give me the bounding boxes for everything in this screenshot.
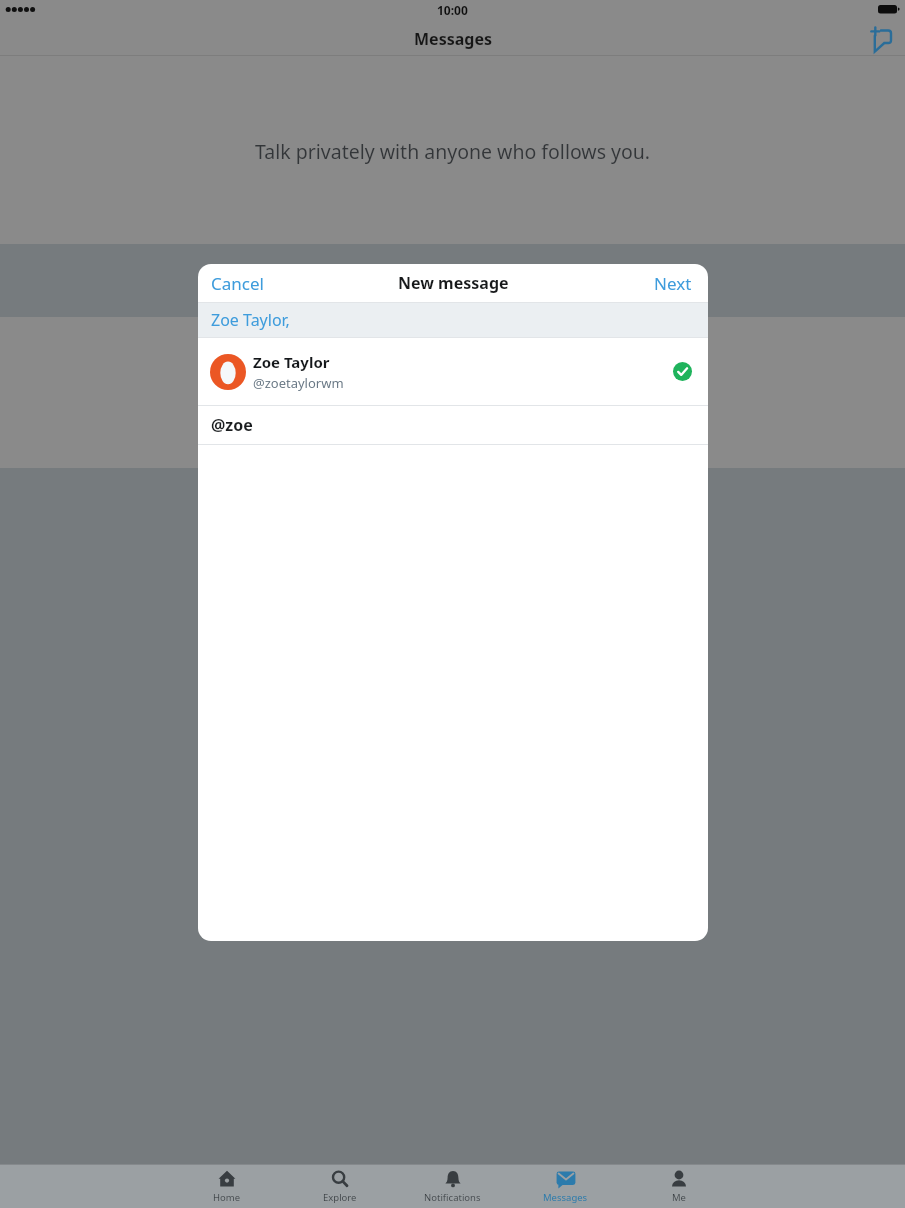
- button[interactable]: Next: [654, 272, 692, 295]
- button[interactable]: Cancel: [211, 272, 264, 295]
- staticText: Zoe Taylor,: [211, 309, 290, 331]
- button[interactable]: [860, 22, 900, 55]
- staticText: Talk privately with anyone who follows y…: [255, 138, 651, 165]
- staticText: Zoe Taylor: [253, 352, 330, 372]
- button[interactable]: Explore: [283, 1164, 396, 1208]
- button[interactable]: Messages: [509, 1164, 622, 1208]
- staticText: @zoetaylorwm: [253, 374, 344, 392]
- button[interactable]: Zoe Taylor: [198, 338, 708, 405]
- button[interactable]: Me: [622, 1164, 735, 1208]
- button[interactable]: Home: [170, 1164, 283, 1208]
- button[interactable]: Notifications: [396, 1164, 509, 1208]
- staticText: Home: [213, 1191, 241, 1204]
- staticText: Messages: [414, 28, 492, 50]
- staticText: Notifications: [424, 1191, 481, 1204]
- staticText: New message: [398, 272, 509, 294]
- staticText: Explore: [323, 1191, 357, 1204]
- staticText: Me: [672, 1191, 686, 1204]
- staticText: 10:00: [437, 2, 468, 18]
- staticText: Next: [654, 272, 692, 295]
- staticText: Messages: [543, 1191, 588, 1204]
- staticText: @zoe: [211, 414, 253, 436]
- staticText: Cancel: [211, 272, 264, 295]
